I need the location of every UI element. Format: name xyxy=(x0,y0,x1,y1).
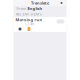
staticText: RECENT ITEMS xyxy=(15,11,41,17)
staticText: Translate xyxy=(31,0,49,6)
staticText: 5.2 km xyxy=(24,22,33,26)
button[interactable]: More xyxy=(59,1,63,5)
staticText: Morning run xyxy=(15,17,42,22)
staticText: From xyxy=(16,6,26,11)
staticText: English xyxy=(27,6,42,11)
